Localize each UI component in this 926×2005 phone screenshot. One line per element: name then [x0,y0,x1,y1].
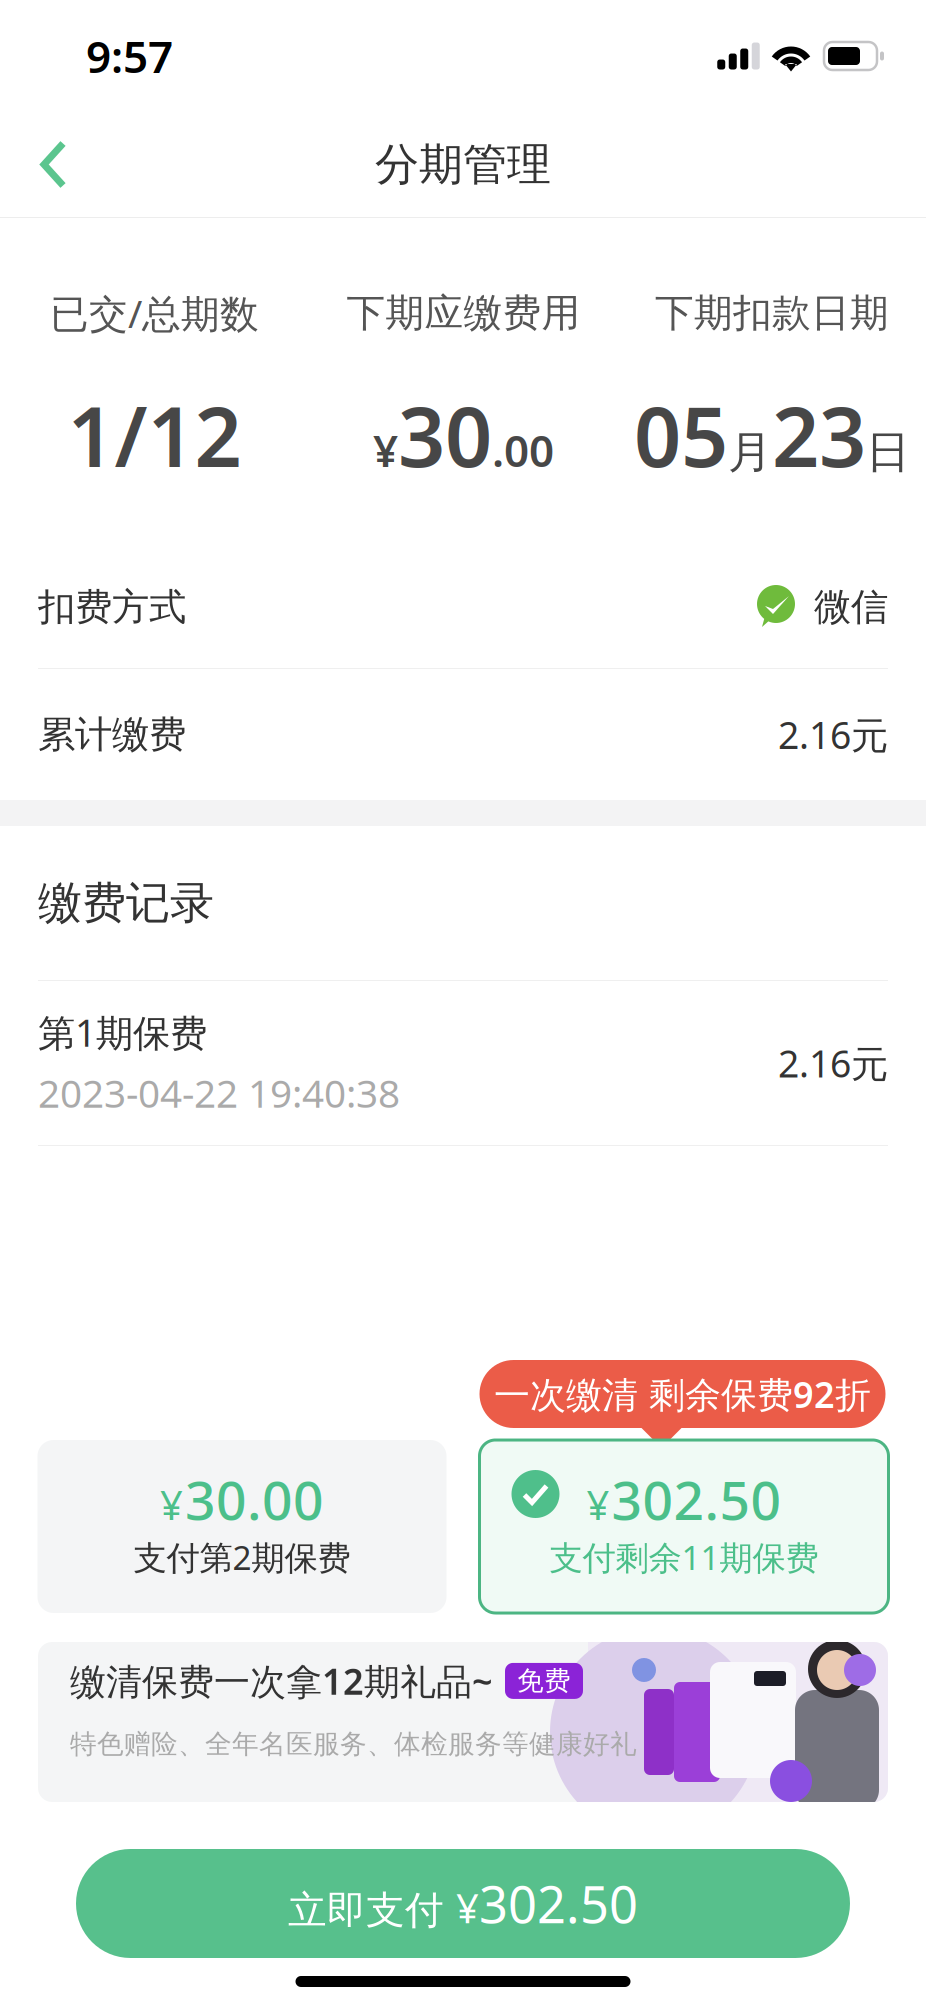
staticText: 第1期保费 [38,1007,207,1057]
staticText: 支付第2期保费 [133,1535,350,1579]
staticText: 微信 [814,584,888,630]
button[interactable]: 立即支付 [76,1849,850,1958]
staticText: 缴费记录 [38,876,214,930]
button[interactable]: ¥ [37,1440,446,1613]
staticText: 已交/总期数 [50,287,259,339]
staticText: 05 [634,380,728,490]
staticText: 2023-04-22 19:40:38 [38,1067,400,1118]
staticText: 一次缴清 剩余保费92折 [494,1370,871,1418]
staticText: 下期应缴费用 [346,289,580,337]
staticText: 立即支付 [288,1886,456,1934]
staticText: 302.50 [479,1870,638,1937]
staticText: 30.00 [185,1464,324,1535]
staticText: 免费 [517,1664,571,1697]
button[interactable]: 扣费方式 [0,546,926,668]
staticText: 扣费方式 [38,584,186,630]
button[interactable]: 返回 [0,112,99,217]
staticText: ¥ [456,1881,479,1934]
staticText: 特色赠险、全年名医服务、体检服务等健康好礼 [70,1728,637,1761]
staticText: 30 [398,380,492,490]
staticText: 日 [866,425,910,479]
staticText: 支付剩余11期保费 [549,1535,818,1579]
staticText: .00 [492,421,554,479]
staticText: 2.16元 [778,710,888,759]
staticText: 9:57 [86,27,173,85]
staticText: ¥ [586,1478,609,1531]
staticText: 月 [728,425,772,479]
staticText: 302.50 [611,1464,781,1535]
staticText: 2.16元 [778,1038,888,1088]
button[interactable]: 缴清保费一次拿12期礼品~ [38,1642,888,1802]
staticText: 1/12 [67,380,241,490]
staticText: ¥ [160,1478,183,1531]
staticText: 23 [772,380,866,490]
staticText: 缴清保费一次拿12期礼品~ [70,1657,493,1705]
staticText: 累计缴费 [38,712,186,757]
staticText: 分期管理 [375,137,551,191]
staticText: ¥ [373,421,398,479]
button[interactable]: ¥ [479,1440,888,1613]
staticText: 下期扣款日期 [655,289,889,337]
